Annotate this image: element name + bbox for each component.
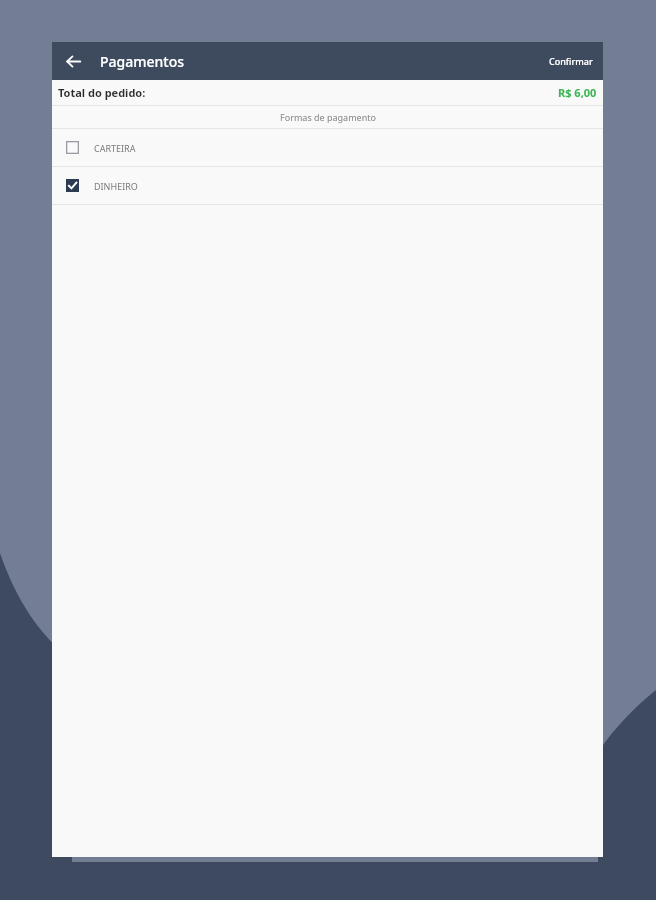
staticText: CARTEIRA bbox=[94, 142, 136, 154]
staticText: Formas de pagamento bbox=[280, 111, 376, 123]
button[interactable]: Confirmar bbox=[539, 45, 603, 77]
staticText: Pagamentos bbox=[100, 52, 185, 71]
staticText: R$ 6,00 bbox=[558, 85, 597, 100]
button[interactable]: Back bbox=[52, 42, 94, 80]
staticText: DINHEIRO bbox=[94, 180, 138, 192]
staticText: Confirmar bbox=[549, 55, 593, 67]
button[interactable]: DINHEIRO bbox=[52, 167, 603, 204]
button[interactable]: CARTEIRA bbox=[52, 129, 603, 166]
staticText: Total do pedido: bbox=[58, 85, 146, 100]
